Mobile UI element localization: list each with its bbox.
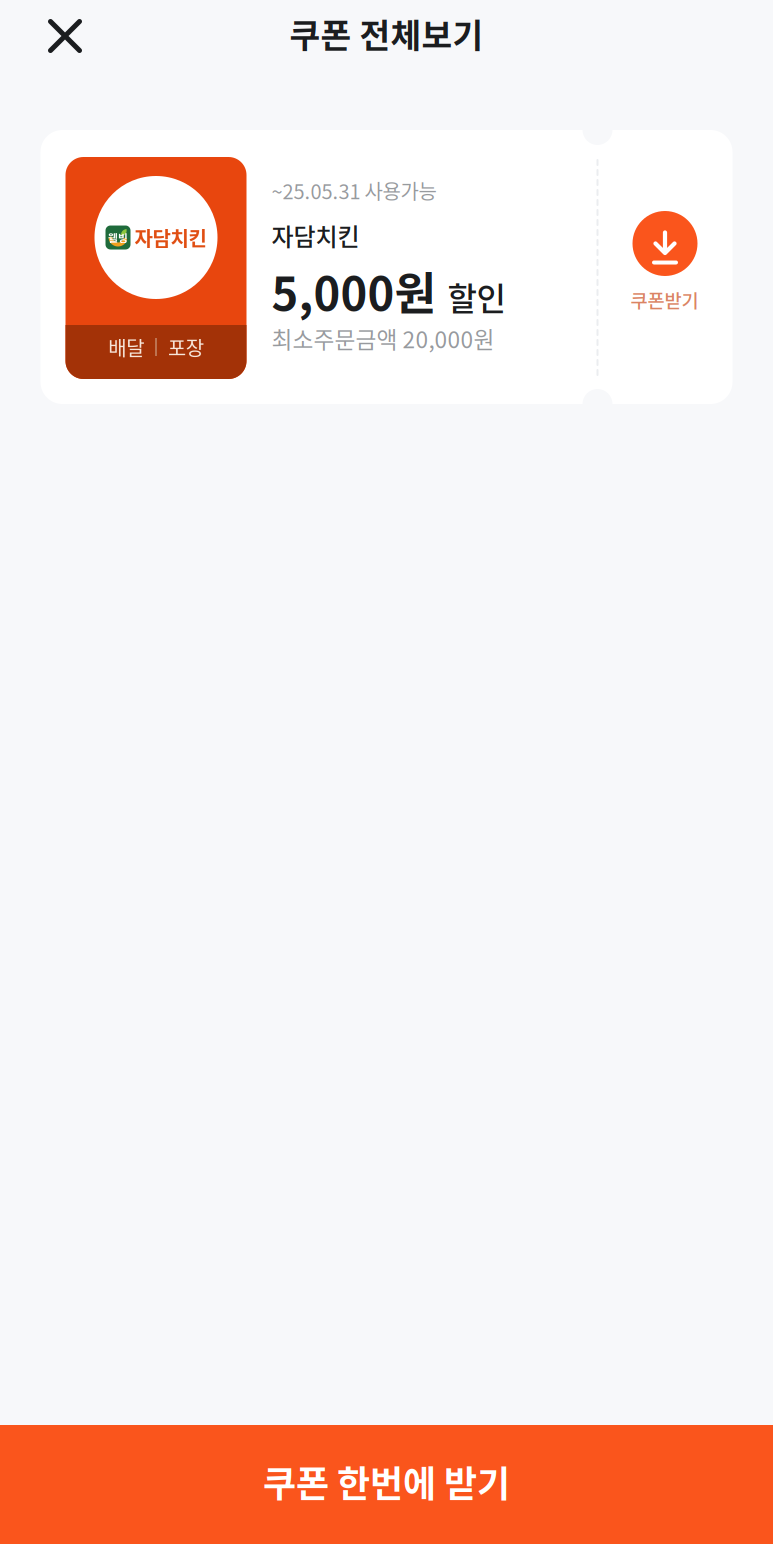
button[interactable]: 웰빙 <box>40 130 596 404</box>
staticText: 최소주문금액 20,000원 <box>271 322 494 355</box>
staticText: 쿠폰 한번에 받기 <box>263 1455 510 1507</box>
button[interactable]: Close <box>34 5 96 67</box>
staticText: 자담치킨 <box>271 218 359 253</box>
staticText: 쿠폰 전체보기 <box>289 9 483 57</box>
staticText: ~25.05.31 사용가능 <box>271 176 436 205</box>
button[interactable]: 쿠폰받기 <box>596 130 732 404</box>
staticText: 웰빙 <box>108 230 128 245</box>
staticText: 할인 <box>447 273 505 320</box>
button[interactable]: 쿠폰 한번에 받기 <box>0 1425 773 1544</box>
staticText: 쿠폰받기 <box>630 286 698 313</box>
staticText: 5,000원 <box>271 258 436 324</box>
staticText: 포장 <box>168 332 204 361</box>
staticText: 배달 <box>108 332 144 361</box>
staticText: 자담치킨 <box>134 223 206 252</box>
